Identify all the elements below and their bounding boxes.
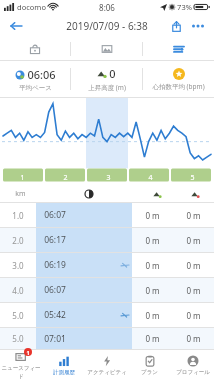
button[interactable]: プラン [128,350,171,380]
staticText: 2 [63,173,68,183]
staticText: プロフィール [176,369,210,376]
button[interactable]: 1 [0,350,42,380]
button[interactable]: 心拍数平均 (bpm) [143,61,214,97]
staticText: 07:01 [44,333,66,345]
staticText: 05:42 [44,309,66,321]
staticText: docomo [17,2,46,12]
button[interactable]: More options [188,16,208,36]
staticText: 3 [106,173,111,183]
staticText: 0 m [145,210,160,221]
staticText: ニュースフィード [0,365,42,379]
staticText: 1 [26,349,30,356]
staticText: 平均ペース [19,84,52,92]
staticText: 計測履歴 [53,369,75,376]
button[interactable]: 06:06 [0,61,70,97]
button[interactable]: 0 [71,61,142,97]
button[interactable]: 計測履歴 [42,350,85,380]
staticText: アクティビティ [87,369,127,376]
staticText: 0 m [145,235,160,246]
button[interactable]: 5.0 [0,303,214,327]
button[interactable]: Splits [143,38,214,60]
staticText: 5 [190,173,195,183]
button[interactable]: Back [6,16,26,36]
staticText: 1.0 [12,210,24,221]
button[interactable]: Share [166,16,186,36]
button[interactable]: 4.0 [0,278,214,302]
staticText: 0 m [145,285,160,296]
staticText: プラン [141,369,158,376]
button[interactable]: 1.0 [0,203,214,227]
button[interactable]: Photos [71,38,142,60]
staticText: 06:07 [44,209,66,221]
staticText: 2019/07/09 - 6:38 [66,19,148,33]
staticText: km [15,189,26,199]
staticText: 0 m [186,235,201,246]
staticText: 0 m [186,285,201,296]
button[interactable]: Summary [0,38,70,60]
staticText: 06:19 [44,259,66,271]
staticText: 心拍数平均 (bpm) [152,82,205,91]
staticText: 上昇高度 (m) [88,83,126,92]
staticText: 3.0 [12,260,24,271]
button[interactable]: プロフィール [171,350,214,380]
staticText: 0 [109,66,116,81]
staticText: 06:07 [44,284,66,296]
staticText: 06:17 [44,234,66,246]
staticText: 1 [20,173,25,183]
staticText: 5.0 [12,333,24,344]
button[interactable]: アクティビティ [85,350,128,380]
staticText: 0 m [145,310,160,321]
staticText: 4.0 [12,285,24,296]
staticText: 0 m [186,260,201,271]
staticText: 8:06 [99,2,115,13]
button[interactable]: 3.0 [0,253,214,277]
staticText: 5.0 [12,310,24,321]
staticText: 4 [148,173,153,183]
staticText: 0 m [186,210,201,221]
staticText: 2.0 [12,235,24,246]
button[interactable]: 2.0 [0,228,214,252]
staticText: 73% [177,2,192,12]
button[interactable]: 5.0 [0,328,214,349]
staticText: 06:06 [27,67,56,82]
staticText: 0 m [186,310,201,321]
staticText: 0 m [186,333,201,344]
staticText: 0 m [145,333,160,344]
staticText: 0 m [145,260,160,271]
